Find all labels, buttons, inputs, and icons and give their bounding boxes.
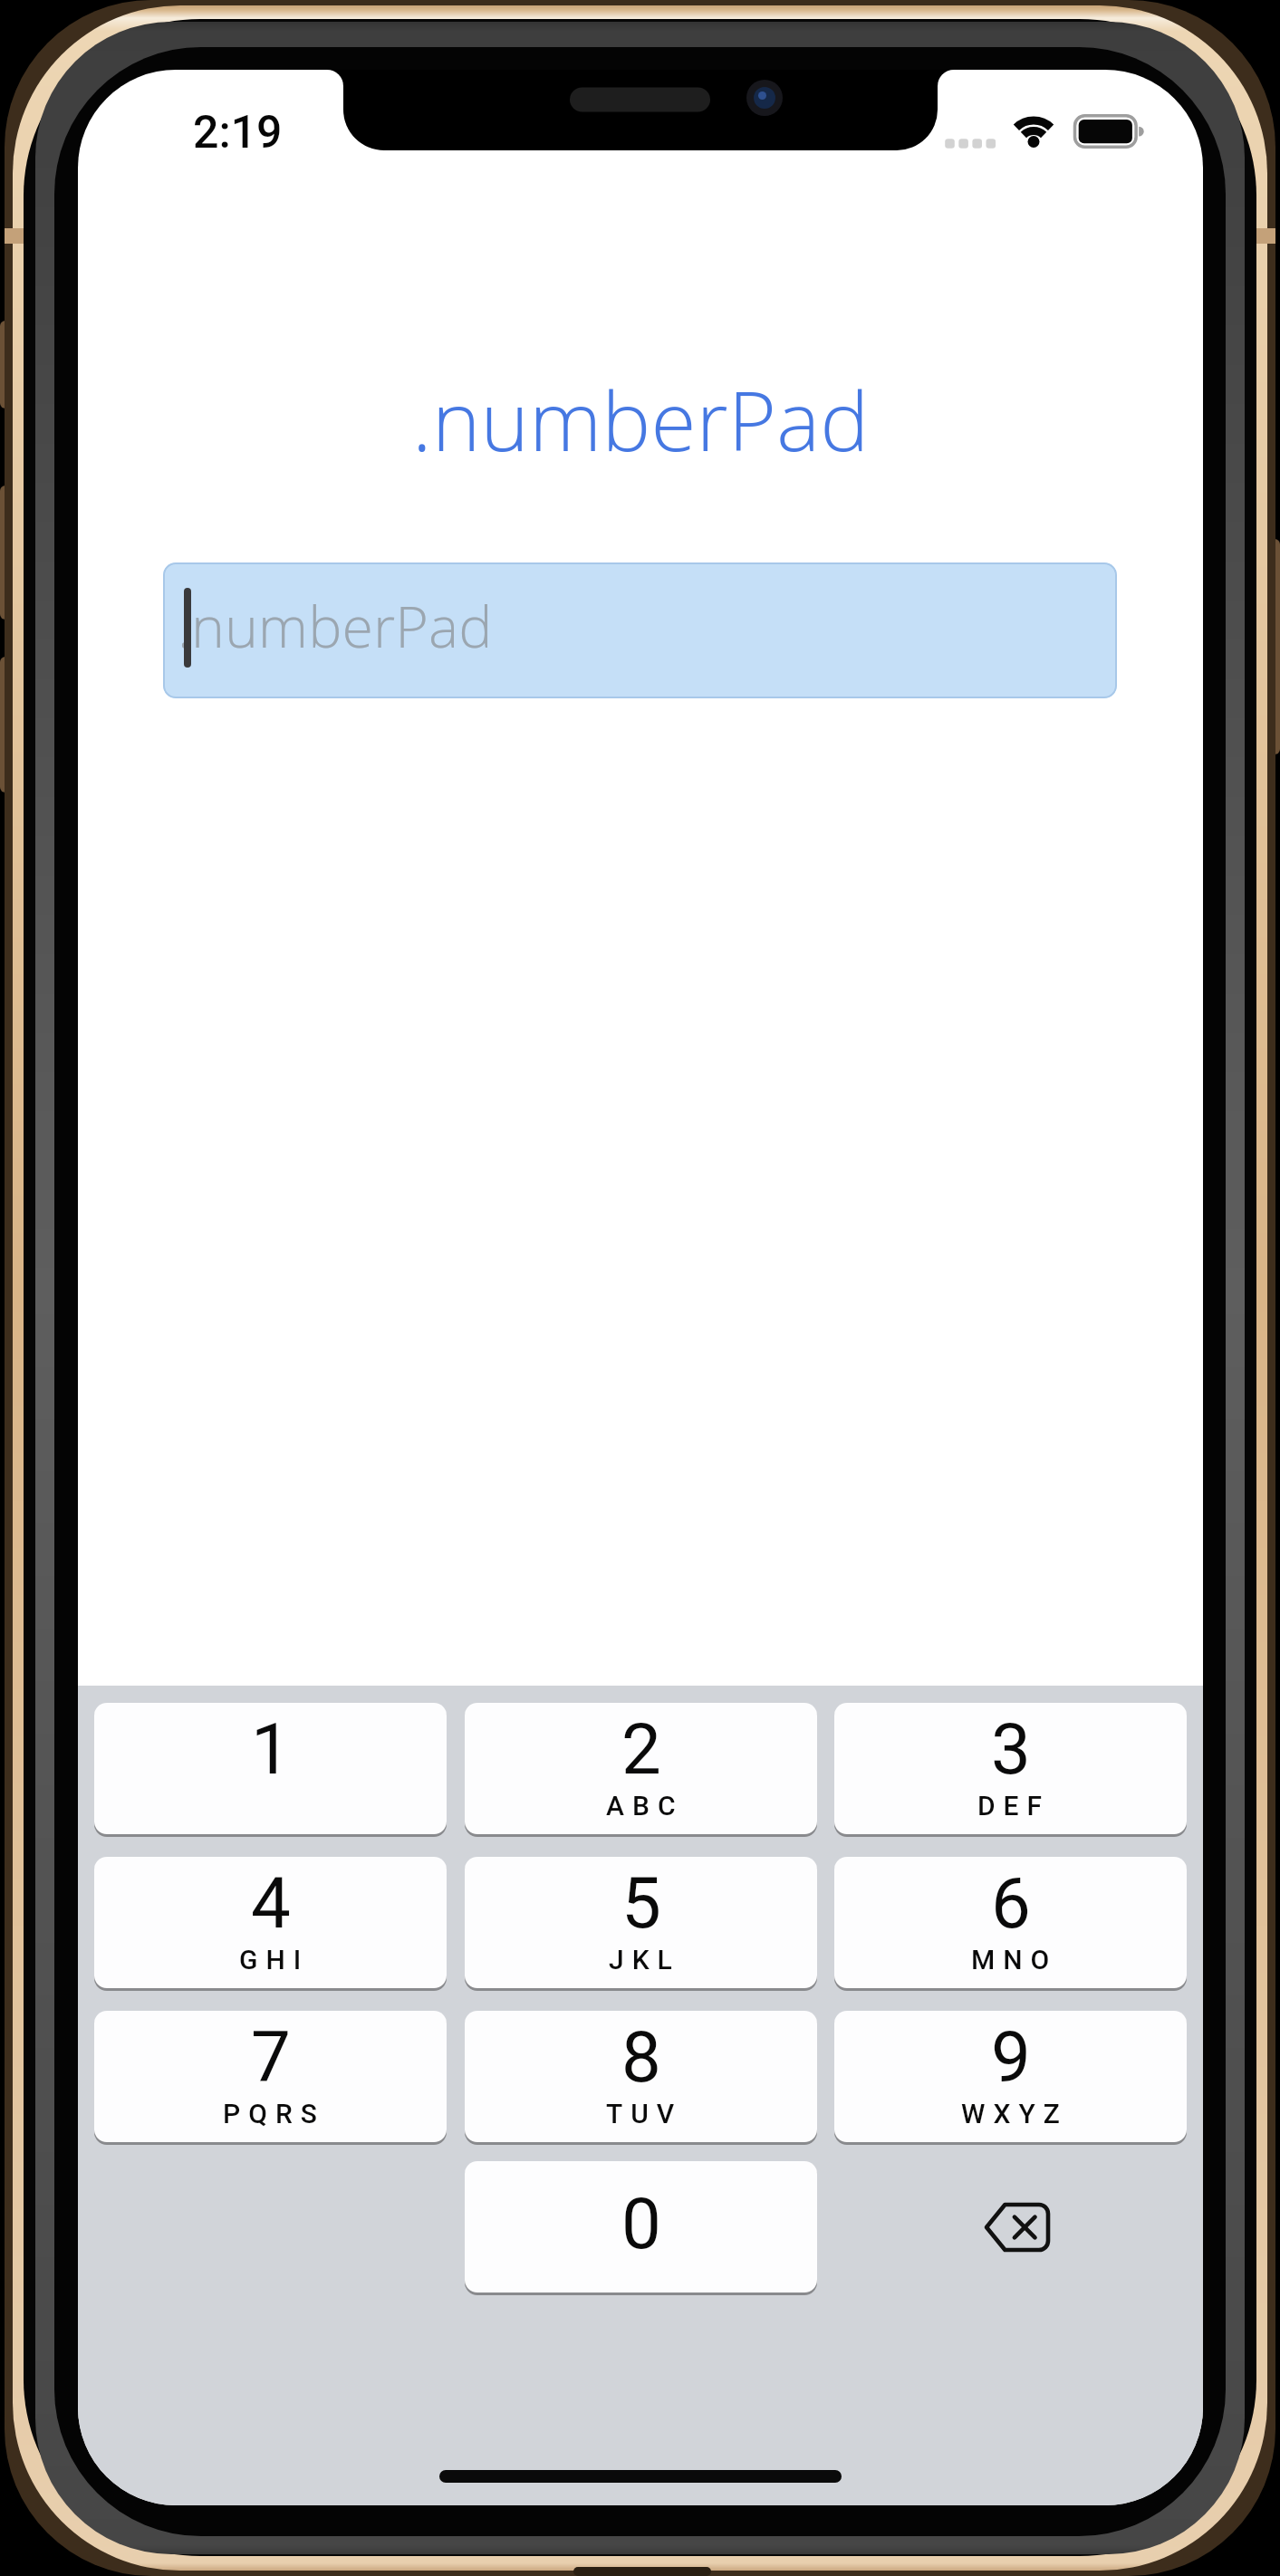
staticText: TUV: [606, 2098, 683, 2129]
button[interactable]: 3: [834, 1703, 1187, 1834]
button[interactable]: 6: [834, 1857, 1187, 1988]
staticText: 2:19: [193, 106, 283, 157]
staticText: MNO: [971, 1944, 1058, 1975]
staticText: 1: [251, 1708, 291, 1791]
button[interactable]: 0: [465, 2161, 817, 2292]
staticText: GHI: [239, 1944, 310, 1975]
staticText: 2: [621, 1708, 661, 1791]
staticText: 6: [991, 1862, 1031, 1945]
staticText: ABC: [606, 1790, 684, 1821]
staticText: .numberPad: [178, 587, 493, 664]
button[interactable]: 9: [834, 2011, 1187, 2142]
staticText: 8: [621, 2016, 661, 2099]
button[interactable]: .numberPad: [163, 562, 1117, 698]
button[interactable]: 1: [94, 1703, 447, 1834]
staticText: 4: [251, 1862, 291, 1945]
staticText: 3: [991, 1708, 1031, 1791]
staticText: PQRS: [223, 2098, 325, 2129]
staticText: .numberPad: [412, 363, 870, 476]
staticText: DEF: [977, 1790, 1051, 1821]
button[interactable]: 2: [465, 1703, 817, 1834]
button[interactable]: 7: [94, 2011, 447, 2142]
staticText: 9: [991, 2016, 1031, 2099]
staticText: 5: [621, 1862, 661, 1945]
button[interactable]: 8: [465, 2011, 817, 2142]
staticText: JKL: [609, 1944, 680, 1975]
staticText: WXYZ: [961, 2098, 1068, 2129]
button[interactable]: [834, 2161, 1187, 2292]
button[interactable]: 5: [465, 1857, 817, 1988]
button[interactable]: 4: [94, 1857, 447, 1988]
staticText: 0: [621, 2183, 661, 2265]
staticText: 7: [251, 2016, 291, 2099]
